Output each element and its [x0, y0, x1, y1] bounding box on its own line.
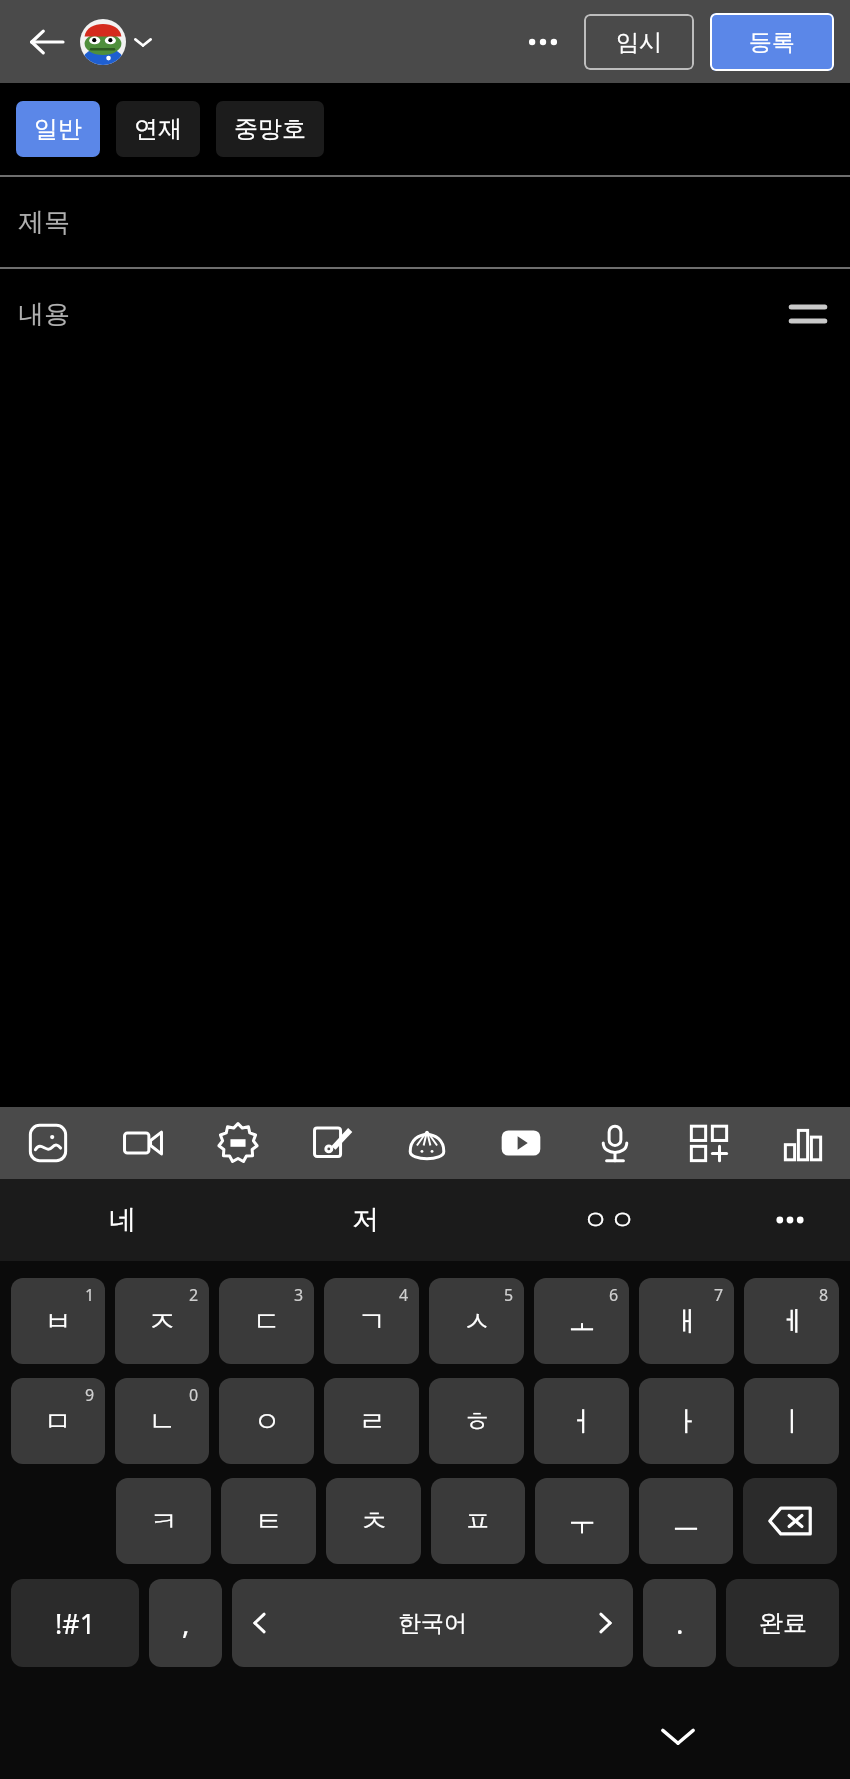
button[interactable]: ㅍ [431, 1478, 525, 1564]
staticText: 4 [399, 1284, 409, 1306]
button[interactable]: ㅇㅇ [487, 1179, 730, 1261]
button[interactable]: Text formatting [780, 286, 836, 342]
button[interactable]: Template [662, 1107, 756, 1179]
staticText: ㅌ [255, 1504, 283, 1539]
staticText: ㅇㅇ [582, 1203, 636, 1237]
staticText: ㅈ [148, 1304, 176, 1339]
staticText: ㅔ [778, 1304, 806, 1339]
staticText: 제목 [18, 206, 70, 239]
staticText: ㄴ [148, 1404, 176, 1439]
button[interactable]: 제목 [0, 177, 850, 267]
staticText: ㅓ [568, 1404, 596, 1439]
staticText: !#1 [55, 1605, 96, 1642]
staticText: 0 [189, 1384, 199, 1406]
button[interactable]: ㅅ [429, 1278, 524, 1364]
staticText: ㅏ [673, 1404, 701, 1439]
staticText: ㅊ [360, 1504, 388, 1539]
button[interactable]: Video [95, 1107, 190, 1179]
button[interactable]: ㅗ [534, 1278, 629, 1364]
staticText: 7 [714, 1284, 724, 1306]
other: Backspace [767, 1498, 813, 1544]
staticText: ㅐ [673, 1304, 701, 1339]
button[interactable]: , [149, 1579, 222, 1667]
button[interactable]: ㅜ [535, 1478, 629, 1564]
button[interactable]: ㅏ [639, 1378, 734, 1464]
button[interactable]: ㅣ [744, 1378, 839, 1464]
button[interactable]: ㄱ [324, 1278, 419, 1364]
button[interactable]: Voice [568, 1107, 662, 1179]
staticText: ㅂ [44, 1304, 72, 1339]
staticText: 내용 [18, 298, 70, 331]
button[interactable]: 임시 [584, 14, 694, 70]
staticText: 등록 [749, 28, 795, 57]
staticText: 한국어 [398, 1609, 467, 1638]
staticText: ㅅ [463, 1304, 491, 1339]
staticText: 5 [504, 1284, 514, 1306]
staticText: , [182, 1604, 190, 1642]
staticText: ㅡ [672, 1504, 700, 1539]
button[interactable]: ㅁ [11, 1378, 105, 1464]
button[interactable]: Backspace [743, 1478, 837, 1564]
button[interactable]: ㅇ [219, 1378, 314, 1464]
staticText: 중망호 [234, 114, 306, 144]
staticText: 임시 [616, 28, 662, 57]
button[interactable]: 한국어 [232, 1579, 633, 1667]
button[interactable]: 내용 [0, 269, 850, 359]
button[interactable]: 완료 [726, 1579, 839, 1667]
button[interactable]: Poll [756, 1107, 850, 1179]
button[interactable]: ㅈ [115, 1278, 209, 1364]
staticText: ㅁ [44, 1404, 72, 1439]
staticText: 8 [819, 1284, 829, 1306]
button[interactable]: ㄴ [115, 1378, 209, 1464]
button[interactable]: More suggestions [730, 1179, 850, 1261]
staticText: 6 [609, 1284, 619, 1306]
staticText: ㄱ [358, 1304, 386, 1339]
button[interactable]: 저 [244, 1179, 487, 1261]
button[interactable]: 일반 [16, 101, 100, 157]
staticText: 일반 [34, 114, 82, 144]
button[interactable]: ㅊ [326, 1478, 421, 1564]
staticText: 저 [352, 1203, 379, 1237]
button[interactable] [80, 19, 154, 65]
staticText: 완료 [759, 1608, 807, 1638]
staticText: 네 [109, 1203, 136, 1237]
button[interactable]: . [643, 1579, 716, 1667]
button[interactable]: GIF [190, 1107, 285, 1179]
button[interactable]: More options [516, 15, 570, 69]
staticText: . [676, 1604, 684, 1642]
button[interactable]: Hide keyboard [646, 1704, 710, 1768]
staticText: ㄹ [358, 1404, 386, 1439]
staticText: ㅗ [568, 1304, 596, 1339]
staticText: 1 [85, 1284, 95, 1306]
staticText: ㅇ [253, 1404, 281, 1439]
button[interactable]: ㅂ [11, 1278, 105, 1364]
staticText: 3 [294, 1284, 304, 1306]
staticText: ㅣ [778, 1404, 806, 1439]
button[interactable]: ㄷ [219, 1278, 314, 1364]
staticText: ㅎ [463, 1404, 491, 1439]
staticText: ㅜ [568, 1504, 596, 1539]
button[interactable]: YouTube [474, 1107, 568, 1179]
button[interactable]: Sticker [380, 1107, 474, 1179]
button[interactable]: AI draw [285, 1107, 380, 1179]
button[interactable]: ㅔ [744, 1278, 839, 1364]
button[interactable]: 중망호 [216, 101, 324, 157]
button[interactable]: ㅋ [116, 1478, 211, 1564]
staticText: 연재 [134, 114, 182, 144]
button[interactable]: 연재 [116, 101, 200, 157]
button[interactable]: ㅌ [221, 1478, 316, 1564]
staticText: ㅍ [464, 1504, 492, 1539]
button[interactable]: Photo [0, 1107, 95, 1179]
staticText: ㅋ [150, 1504, 178, 1539]
button[interactable]: Back [18, 14, 74, 70]
staticText: 2 [189, 1284, 199, 1306]
button[interactable]: 등록 [710, 13, 834, 71]
button[interactable]: !#1 [11, 1579, 139, 1667]
button[interactable]: ㅐ [639, 1278, 734, 1364]
button[interactable]: ㅎ [429, 1378, 524, 1464]
staticText: 9 [85, 1384, 95, 1406]
button[interactable]: ㅓ [534, 1378, 629, 1464]
button[interactable]: ㅡ [639, 1478, 733, 1564]
button[interactable]: 네 [0, 1179, 244, 1261]
button[interactable]: ㄹ [324, 1378, 419, 1464]
